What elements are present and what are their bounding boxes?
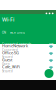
button[interactable]: Office-5G — [0, 51, 56, 58]
staticText: Office-5G — [2, 50, 19, 55]
staticText: Wi-Fi Direct — [10, 31, 25, 34]
staticText: Guest — [2, 57, 12, 62]
staticText: Secured — [2, 55, 13, 59]
staticText: Open — [2, 62, 10, 66]
staticText: Connected — [2, 48, 18, 52]
staticText: Scan — [49, 42, 54, 46]
staticText: HomeNetwork — [2, 43, 28, 48]
button[interactable]: Guest — [0, 58, 56, 65]
button[interactable]: Cafe_WiFi — [0, 65, 56, 72]
staticText: Wi-Fi — [2, 16, 14, 23]
button[interactable]: HomeNetwork — [0, 44, 56, 51]
staticText: Secured — [2, 69, 13, 73]
staticText: ON — [2, 31, 6, 34]
staticText: Connected networks — [2, 42, 31, 46]
staticText: Cafe_WiFi — [2, 64, 20, 69]
